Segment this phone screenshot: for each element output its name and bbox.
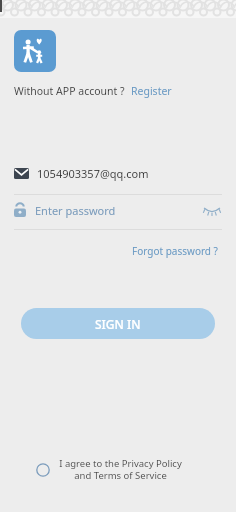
staticText: Forgot password ? [132, 244, 218, 258]
button[interactable]: Forgot password ? [130, 242, 220, 260]
button[interactable]: I agree to the Privacy Policy and Terms … [36, 457, 216, 482]
staticText: I agree to the Privacy Policy and Terms … [59, 457, 182, 482]
staticText: Without APP account ? [14, 84, 125, 98]
button[interactable]: Show password [202, 202, 222, 218]
button[interactable]: App logo [14, 30, 56, 72]
staticText: 1054903357@qq.com [37, 166, 149, 181]
button[interactable]: 1054903357@qq.com [14, 160, 222, 186]
staticText: Enter password [35, 203, 116, 218]
button[interactable]: SIGN IN [21, 308, 215, 339]
staticText: SIGN IN [95, 316, 141, 332]
button[interactable]: Enter password [14, 195, 222, 225]
staticText: Register [131, 84, 172, 98]
button[interactable]: Register [131, 84, 172, 98]
